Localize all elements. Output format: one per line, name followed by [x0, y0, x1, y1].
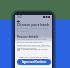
button[interactable]: Agree and Continue [17, 59, 51, 65]
staticText: You are about to share your account deta… [17, 38, 51, 50]
button[interactable]: Back [16, 19, 20, 23]
staticText: Secured · powered by Bank [15, 56, 52, 59]
staticText: Review details [17, 35, 39, 39]
staticText: I accept the terms of use [21, 48, 48, 51]
staticText: Choose your bank [17, 22, 50, 27]
staticText: 9:41 [17, 15, 23, 18]
staticText: Select the account you want to pay with [17, 26, 51, 32]
staticText: Agree and Continue [22, 60, 47, 64]
button[interactable]: I accept the terms of use [17, 48, 51, 51]
